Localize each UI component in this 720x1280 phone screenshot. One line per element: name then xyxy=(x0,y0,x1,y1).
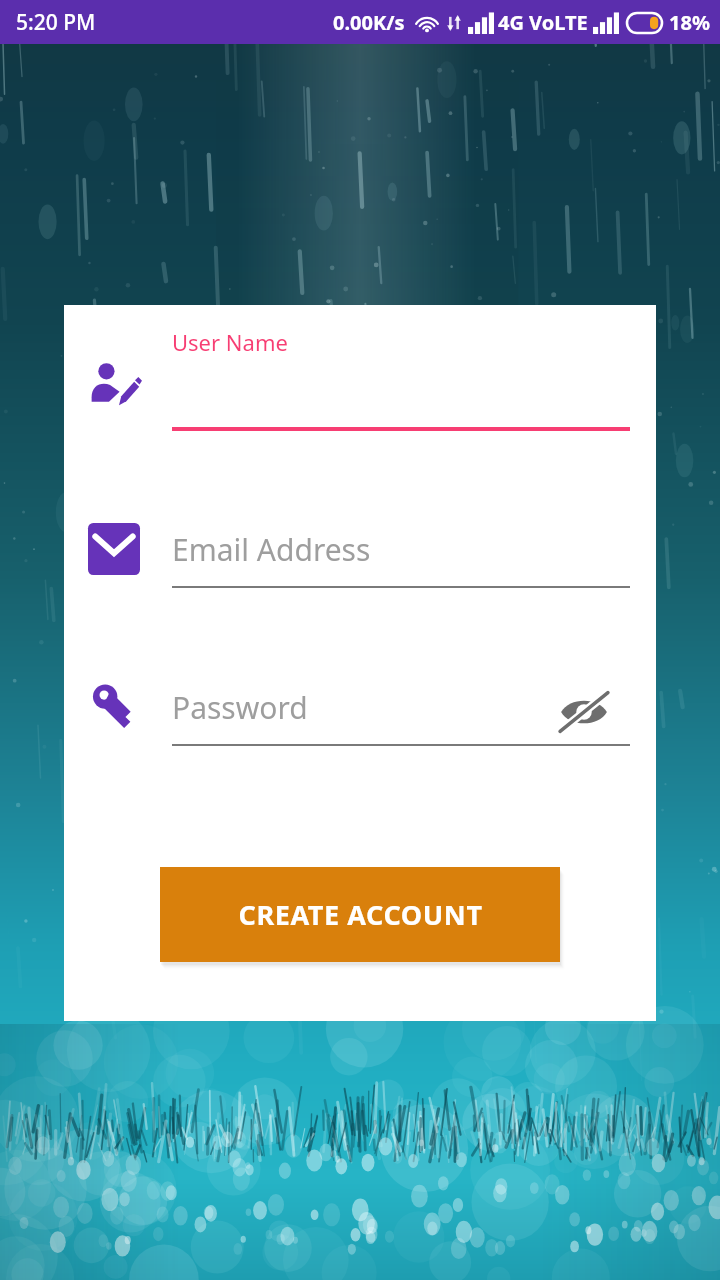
staticText: 5:20 PM xyxy=(16,8,96,37)
staticText: 18% xyxy=(669,9,710,36)
staticText: 4G VoLTE xyxy=(498,9,588,36)
button[interactable]: Edit user name xyxy=(86,357,142,413)
staticText: Email Address xyxy=(172,529,371,570)
staticText: 0.00K/s xyxy=(333,9,405,36)
button[interactable]: Show password xyxy=(554,687,614,737)
staticText: Password xyxy=(172,687,308,728)
staticText: User Name xyxy=(172,327,288,357)
button[interactable]: Password xyxy=(88,681,140,733)
button[interactable]: Email Address xyxy=(172,510,630,588)
button[interactable] xyxy=(172,353,630,431)
button[interactable]: Password xyxy=(172,668,562,746)
button[interactable]: CREATE ACCOUNT xyxy=(160,867,560,962)
button[interactable]: Email xyxy=(88,523,140,575)
staticText: CREATE ACCOUNT xyxy=(238,896,483,933)
